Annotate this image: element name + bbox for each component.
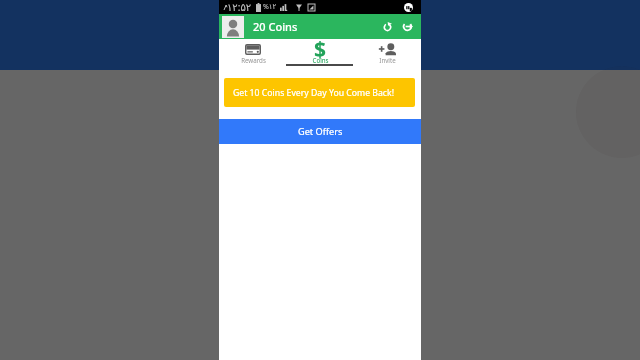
staticText: Get Offers (298, 125, 343, 138)
staticText: 20 Coins (253, 19, 298, 34)
staticText: Invite (379, 56, 396, 64)
staticText: ۱۲:۵۲ (227, 0, 252, 14)
button[interactable]: Get 10 Coins Every Day You Come Back! (224, 78, 415, 107)
button[interactable]: Log out (398, 17, 417, 36)
button[interactable]: Refresh (378, 17, 397, 36)
button[interactable]: Get Offers (219, 119, 421, 144)
staticText: Get 10 Coins Every Day You Come Back! (233, 87, 394, 99)
staticText: %۱۲ (263, 2, 277, 12)
staticText: Rewards (241, 56, 266, 64)
button[interactable]: Invite (354, 39, 421, 66)
staticText: $ (314, 35, 327, 64)
button[interactable]: Profile (222, 16, 244, 38)
button[interactable]: Rewards (219, 39, 287, 66)
staticText: Coins (312, 56, 329, 64)
button[interactable]: $ (287, 39, 354, 66)
